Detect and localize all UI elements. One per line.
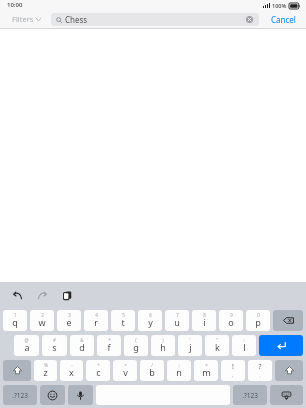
- staticText: !: [232, 362, 234, 372]
- staticText: 7: [176, 312, 179, 318]
- button[interactable]: 4: [84, 310, 108, 331]
- button[interactable]: Dictation: [68, 385, 93, 405]
- button[interactable]: Cancel: [265, 11, 302, 28]
- button[interactable]: Hide keyboard: [270, 385, 303, 405]
- button[interactable]: 6: [138, 310, 162, 331]
- button[interactable]: -: [60, 360, 83, 381]
- staticText: f: [107, 341, 111, 353]
- button[interactable]: .?123: [233, 385, 267, 405]
- staticText: e: [66, 316, 72, 328]
- staticText: b: [149, 366, 155, 378]
- staticText: &: [80, 337, 84, 343]
- staticText: ×: [205, 362, 208, 368]
- button[interactable]: @: [14, 335, 39, 356]
- staticText: 6: [149, 312, 152, 318]
- staticText: *: [108, 337, 111, 343]
- staticText: y: [148, 316, 153, 328]
- button[interactable]: ": [205, 335, 229, 356]
- staticText: o: [228, 316, 234, 328]
- button[interactable]: 7: [165, 310, 189, 331]
- staticText: h: [160, 341, 166, 353]
- staticText: Filters: [12, 14, 34, 24]
- button[interactable]: Backspace: [273, 310, 303, 331]
- button[interactable]: Shift: [275, 360, 303, 381]
- staticText: #: [53, 337, 56, 343]
- button[interactable]: 2: [30, 310, 54, 331]
- staticText: d: [79, 341, 85, 353]
- staticText: ?: [258, 362, 262, 372]
- button[interactable]: 9: [219, 310, 243, 331]
- button[interactable]: 1: [3, 310, 27, 331]
- staticText: p: [255, 316, 261, 328]
- button[interactable]: ;: [167, 360, 191, 381]
- staticText: =: [124, 362, 127, 368]
- staticText: 10:00: [7, 1, 23, 9]
- staticText: @: [24, 337, 29, 343]
- staticText: -: [71, 362, 73, 368]
- staticText: k: [215, 341, 220, 353]
- staticText: 0: [257, 312, 260, 318]
- button[interactable]: 0: [246, 310, 270, 331]
- button[interactable]: 3: [57, 310, 81, 331]
- staticText: .: [259, 372, 261, 379]
- button[interactable]: Emoji: [40, 385, 65, 405]
- staticText: 5: [122, 312, 125, 318]
- button[interactable]: Undo: [9, 287, 25, 303]
- staticText: 1: [14, 312, 17, 318]
- staticText: ': [189, 337, 191, 343]
- button[interactable]: ': [178, 335, 202, 356]
- button[interactable]: Filters: [10, 12, 43, 26]
- staticText: q: [12, 316, 18, 328]
- button[interactable]: :: [232, 335, 256, 356]
- staticText: u: [174, 316, 180, 328]
- button[interactable]: =: [113, 360, 137, 381]
- staticText: a: [24, 341, 30, 353]
- button[interactable]: Clear search: [245, 15, 254, 24]
- staticText: j: [189, 341, 192, 353]
- staticText: x: [69, 366, 74, 378]
- staticText: ": [216, 337, 218, 343]
- staticText: .?123: [242, 391, 258, 400]
- staticText: Cancel: [271, 14, 296, 25]
- staticText: 100%: [272, 2, 287, 9]
- staticText: v: [123, 366, 128, 378]
- button[interactable]: *: [97, 335, 121, 356]
- button[interactable]: 8: [192, 310, 216, 331]
- staticText: ): [162, 337, 164, 343]
- staticText: ,: [232, 372, 234, 379]
- button[interactable]: /: [140, 360, 164, 381]
- staticText: :: [243, 337, 245, 343]
- staticText: 8: [203, 312, 206, 318]
- button[interactable]: ?: [248, 360, 272, 381]
- staticText: i: [203, 316, 206, 328]
- staticText: 2: [41, 312, 44, 318]
- button[interactable]: Chess: [51, 13, 259, 26]
- staticText: l: [243, 341, 246, 353]
- staticText: n: [176, 366, 182, 378]
- staticText: ;: [178, 362, 180, 368]
- staticText: r: [94, 316, 98, 328]
- button[interactable]: &: [70, 335, 94, 356]
- button[interactable]: Return: [259, 335, 303, 356]
- staticText: s: [52, 341, 57, 353]
- button[interactable]: !: [221, 360, 245, 381]
- button[interactable]: ×: [194, 360, 218, 381]
- button[interactable]: Redo: [34, 287, 50, 303]
- staticText: /: [151, 362, 153, 368]
- staticText: %: [44, 362, 48, 368]
- button[interactable]: (: [124, 335, 148, 356]
- staticText: m: [202, 366, 211, 378]
- button[interactable]: ): [151, 335, 175, 356]
- staticText: .?123: [12, 391, 28, 400]
- button[interactable]: Paste: [59, 287, 75, 303]
- button[interactable]: Shift: [3, 360, 31, 381]
- button[interactable]: 5: [111, 310, 135, 331]
- button[interactable]: +: [86, 360, 110, 381]
- staticText: z: [43, 366, 48, 378]
- button[interactable]: %: [34, 360, 57, 381]
- button[interactable]: #: [42, 335, 67, 356]
- staticText: +: [97, 362, 100, 368]
- staticText: c: [96, 366, 101, 378]
- button[interactable]: .?123: [3, 385, 37, 405]
